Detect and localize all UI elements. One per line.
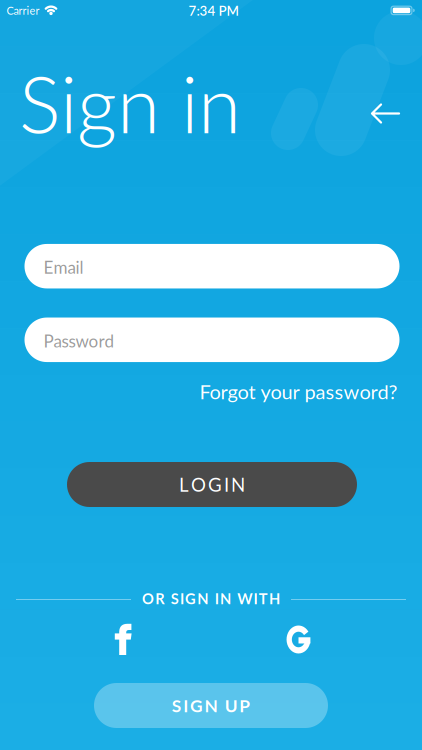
staticText: G [190,695,203,716]
staticText: 7:34 PM [188,3,238,19]
staticText: U [225,695,238,716]
staticText: O [191,473,206,496]
staticText: I [183,695,188,716]
staticText: Carrier [6,4,39,17]
staticText: P [239,695,250,716]
staticText: S [171,590,179,607]
button[interactable]: Forgot your password? [199,379,397,403]
staticText: N [204,695,217,716]
button[interactable]: Password [24,318,399,362]
button[interactable]: Sign in with Google [276,617,320,661]
staticText: L [179,473,189,496]
staticText: O [142,590,154,607]
staticText: Forgot your password? [199,379,397,403]
staticText: T [259,590,268,607]
staticText: N [197,590,208,607]
staticText: N [231,473,245,496]
button[interactable]: S [94,683,328,728]
staticText: N [220,590,231,607]
staticText: S [172,695,182,716]
button[interactable]: Back [363,92,407,136]
staticText: G [185,590,196,607]
button[interactable]: Sign in with Facebook [101,618,145,662]
staticText: R [155,590,164,607]
staticText: I [253,590,257,607]
staticText: I [180,590,184,607]
staticText: W [237,590,252,607]
button[interactable]: L [67,462,357,507]
button[interactable]: Email [24,244,399,288]
staticText: Password [43,331,114,351]
staticText: Email [43,257,83,277]
staticText: H [269,590,280,607]
staticText: I [224,473,229,496]
staticText: Sign in [19,56,241,150]
staticText: G [208,473,222,496]
staticText: I [215,590,219,607]
